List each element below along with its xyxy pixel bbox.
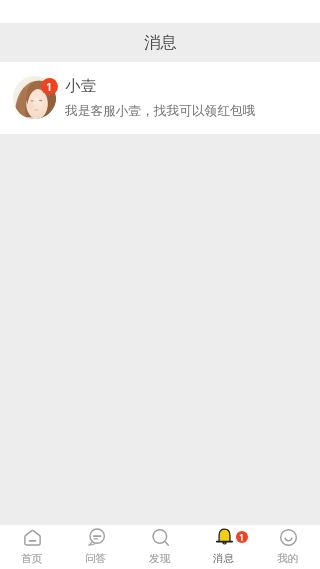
staticText: 问答 bbox=[85, 552, 107, 565]
staticText: 我的 bbox=[277, 552, 299, 565]
button[interactable]: Questions and answers bbox=[64, 525, 128, 569]
staticText: 1 bbox=[46, 79, 53, 94]
staticText: 首页 bbox=[21, 552, 43, 565]
button[interactable]: Home bbox=[0, 525, 64, 569]
button[interactable]: Messages, 1 unread bbox=[192, 525, 256, 569]
staticText: 消息 bbox=[213, 552, 235, 565]
staticText: 我是客服小壹，找我可以领红包哦 bbox=[65, 103, 256, 119]
button[interactable]: 1 bbox=[0, 62, 320, 134]
staticText: 1 bbox=[239, 531, 245, 543]
button[interactable]: Profile bbox=[256, 525, 320, 569]
staticText: 发现 bbox=[149, 552, 171, 565]
button[interactable]: Discover bbox=[128, 525, 192, 569]
staticText: 小壹 bbox=[65, 76, 96, 96]
staticText: 消息 bbox=[144, 32, 177, 53]
